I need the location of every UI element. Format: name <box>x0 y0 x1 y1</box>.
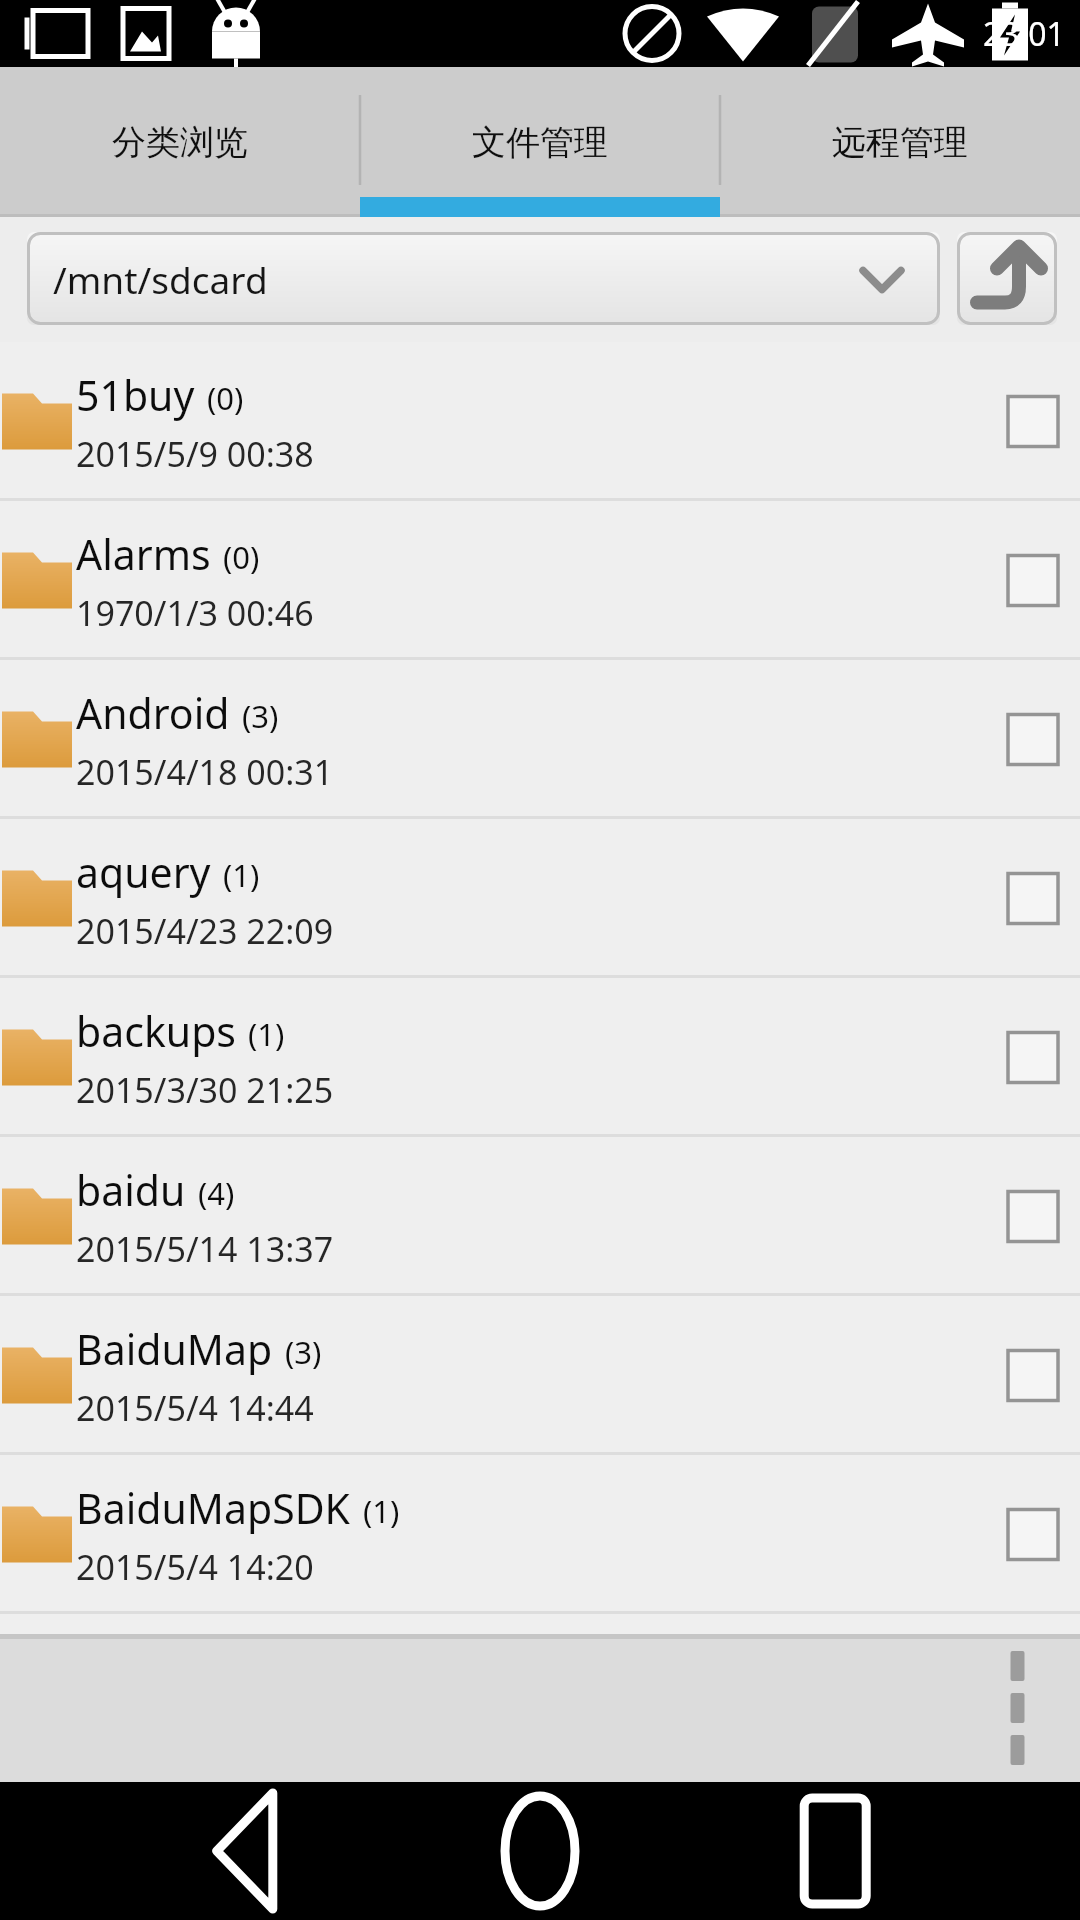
button[interactable]: Home <box>360 1782 720 1920</box>
staticText: (1) <box>223 854 260 896</box>
button[interactable]: BaiduMapSDK <box>0 1455 1080 1614</box>
button[interactable]: BaiduMap <box>0 1296 1080 1455</box>
staticText: 2015/5/14 13:37 <box>76 1226 334 1272</box>
staticText: (3) <box>285 1331 322 1373</box>
button[interactable]: More options <box>965 1634 1080 1782</box>
staticText: (1) <box>363 1490 400 1532</box>
staticText: BaiduMapSDK <box>76 1480 351 1536</box>
staticText: Alarms <box>76 526 211 582</box>
staticText: 2015/5/4 14:20 <box>76 1544 314 1590</box>
button[interactable]: aquery <box>0 819 1080 978</box>
staticText: 23:01 <box>983 12 1065 56</box>
staticText: (4) <box>198 1172 235 1214</box>
staticText: backups <box>76 1003 236 1059</box>
button[interactable]: Back <box>0 1782 360 1920</box>
button[interactable]: baidu <box>0 1137 1080 1296</box>
staticText: 文件管理 <box>472 121 608 164</box>
staticText: (0) <box>223 536 260 578</box>
staticText: /mnt/sdcard <box>53 254 268 304</box>
button[interactable]: 远程管理 <box>720 67 1080 217</box>
staticText: (1) <box>248 1013 285 1055</box>
staticText: (0) <box>207 377 244 419</box>
staticText: 51buy <box>76 367 195 423</box>
button[interactable]: Recent apps <box>720 1782 1080 1920</box>
staticText: 2015/4/23 22:09 <box>76 908 334 954</box>
button[interactable]: Alarms <box>0 501 1080 660</box>
button[interactable]: 分类浏览 <box>0 67 360 217</box>
staticText: baidu <box>76 1162 186 1218</box>
button[interactable]: Android <box>0 660 1080 819</box>
staticText: Android <box>76 685 230 741</box>
staticText: aquery <box>76 844 211 900</box>
staticText: 2015/5/9 00:38 <box>76 431 314 477</box>
button[interactable]: backups <box>0 978 1080 1137</box>
button[interactable]: Go up one folder <box>957 232 1057 325</box>
staticText: 2015/4/18 00:31 <box>76 749 334 795</box>
staticText: 2015/5/4 14:44 <box>76 1385 314 1431</box>
staticText: BaiduMap <box>76 1321 273 1377</box>
staticText: 分类浏览 <box>112 121 248 164</box>
staticText: 1970/1/3 00:46 <box>76 590 314 636</box>
staticText: (3) <box>242 695 279 737</box>
staticText: 2015/3/30 21:25 <box>76 1067 334 1113</box>
staticText: 远程管理 <box>832 121 968 164</box>
button[interactable]: 文件管理 <box>360 67 720 217</box>
button[interactable]: /mnt/sdcard <box>27 232 940 325</box>
button[interactable]: 51buy <box>0 342 1080 501</box>
